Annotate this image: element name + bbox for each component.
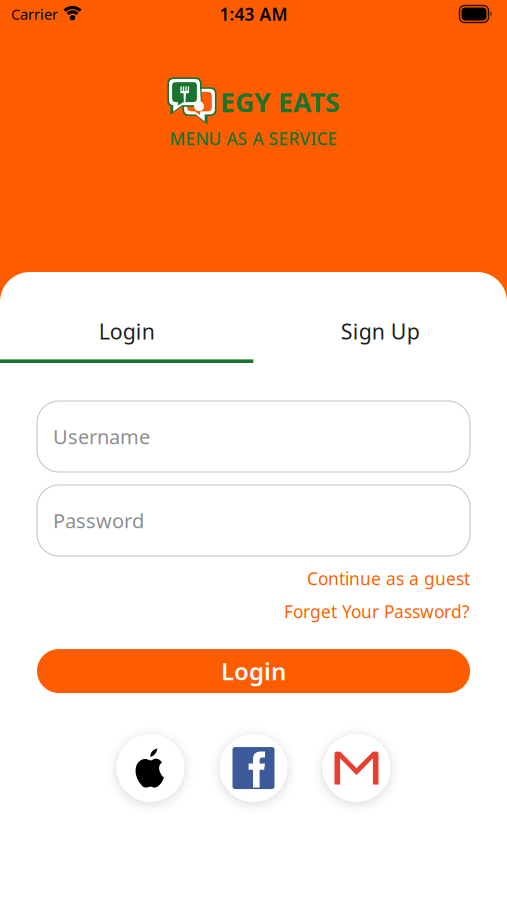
button[interactable]: Continue as a guest: [307, 567, 470, 590]
button[interactable]: Sign Up: [253, 272, 507, 363]
staticText: Forget Your Password?: [284, 600, 470, 623]
button[interactable]: Login: [0, 272, 253, 363]
staticText: Carrier: [11, 4, 58, 24]
button[interactable]: Username: [37, 401, 470, 472]
staticText: MENU AS A SERVICE: [169, 127, 337, 150]
staticText: Login: [221, 655, 286, 687]
staticText: Username: [53, 423, 150, 450]
button[interactable]: Sign in with Facebook: [219, 734, 287, 802]
button[interactable]: Sign in with Apple: [116, 734, 184, 802]
button[interactable]: Password: [37, 485, 470, 556]
staticText: Sign Up: [341, 317, 420, 345]
staticText: Password: [53, 507, 144, 534]
button[interactable]: Login: [37, 649, 470, 693]
button[interactable]: Sign in with Google: [322, 734, 390, 802]
staticText: Continue as a guest: [307, 567, 470, 590]
button[interactable]: Forget Your Password?: [284, 600, 470, 623]
staticText: 1:43 AM: [219, 2, 287, 25]
staticText: Login: [99, 317, 155, 345]
staticText: EGY EATS: [220, 84, 340, 120]
